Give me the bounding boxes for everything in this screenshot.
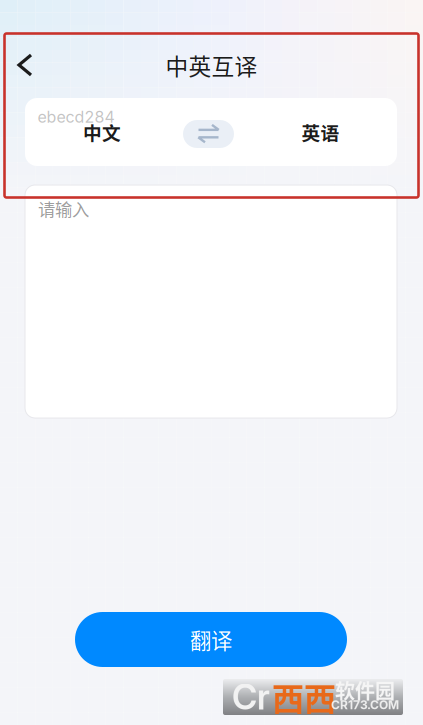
staticText: 英语 [301, 118, 339, 145]
staticText: 西西 [272, 674, 336, 720]
staticText: Cr [232, 676, 270, 718]
button[interactable]: 翻译 [75, 612, 347, 667]
staticText: 请输入 [38, 196, 89, 221]
staticText: 软件园 [335, 675, 395, 704]
staticText: 翻译 [190, 624, 232, 655]
staticText: ebecd284 [37, 107, 114, 127]
button[interactable]: 英语 [260, 98, 380, 166]
staticText: 中英互译 [165, 49, 257, 81]
button[interactable]: 中文 [42, 98, 162, 166]
staticText: 中文 [83, 118, 121, 145]
staticText: CR173.COM [331, 698, 399, 712]
button[interactable]: Back [3, 43, 47, 87]
button[interactable]: Swap languages [183, 120, 234, 148]
